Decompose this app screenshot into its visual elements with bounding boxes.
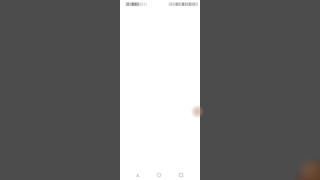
button[interactable]: Recents bbox=[173, 167, 189, 180]
button[interactable]: Status bar bbox=[120, 0, 200, 12]
button[interactable]: Home bbox=[151, 167, 167, 180]
button[interactable]: Back bbox=[130, 167, 146, 180]
button[interactable]: Open item bbox=[191, 105, 204, 118]
